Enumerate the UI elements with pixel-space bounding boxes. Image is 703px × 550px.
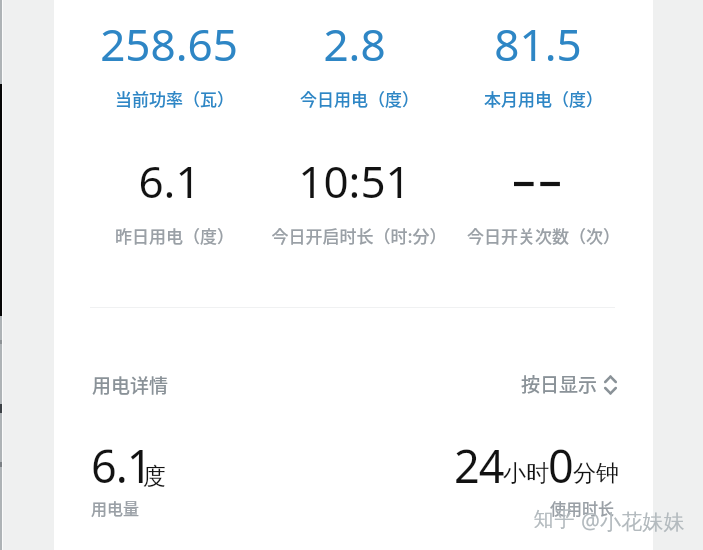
staticText: 小时 [503, 459, 549, 488]
staticText: 0 [548, 435, 573, 496]
staticText: 今日开启时长（时:分） [271, 223, 447, 248]
staticText: @小花妹妹 [581, 507, 685, 536]
staticText: 今日开关次数（次） [467, 223, 620, 248]
staticText: 当前功率（瓦） [115, 86, 234, 111]
staticText: 按日显示 [521, 370, 598, 396]
staticText: 分钟 [573, 459, 619, 488]
staticText: 24 [454, 435, 504, 496]
staticText: 昨日用电（度） [115, 223, 234, 248]
staticText: 81.5 [494, 14, 582, 74]
staticText: 6.1 [91, 435, 152, 496]
staticText: 10:51 [298, 151, 411, 211]
staticText: 258.65 [100, 14, 238, 74]
button[interactable]: 按日显示 [521, 370, 618, 396]
staticText: 2.8 [323, 14, 386, 74]
staticText: 本月用电（度） [484, 86, 603, 111]
staticText: 今日用电（度） [300, 86, 419, 111]
staticText: 知乎 [533, 507, 575, 532]
staticText: 6.1 [138, 151, 201, 211]
staticText: 用电量 [91, 496, 140, 519]
staticText: 度 [143, 462, 166, 491]
staticText: 用电详情 [92, 371, 169, 399]
other: Change display period [603, 374, 618, 396]
staticText: 使用时长 [550, 496, 615, 519]
